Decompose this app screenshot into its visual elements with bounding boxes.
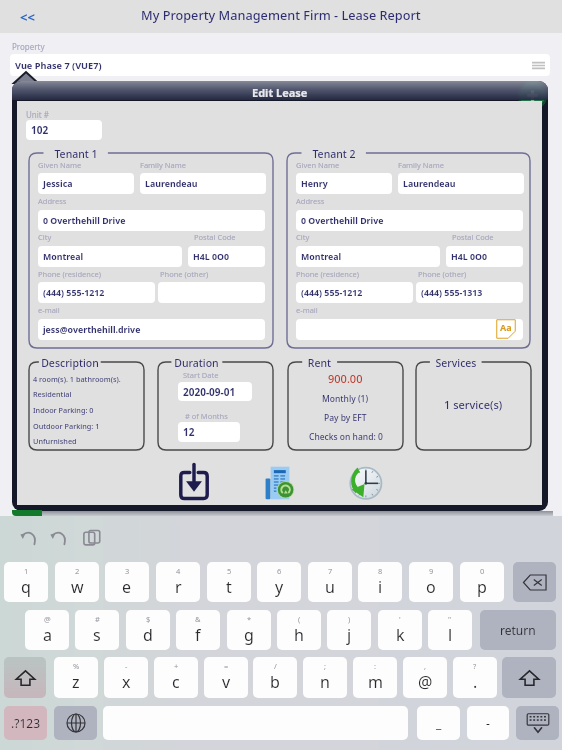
button[interactable]: jess@overthehill.drive <box>38 319 265 340</box>
staticText: ? <box>473 661 477 671</box>
staticText: .?123 <box>11 715 41 731</box>
staticText: z <box>72 671 80 693</box>
button[interactable]: 9 <box>409 562 453 602</box>
button[interactable]: 0 Overthehill Drive <box>38 210 265 231</box>
button[interactable]: * <box>227 610 271 650</box>
staticText: Given Name <box>296 160 340 170</box>
button[interactable]: ? <box>453 657 497 698</box>
staticText: Address <box>296 196 325 206</box>
staticText: H4L 0O0 <box>451 251 487 263</box>
button[interactable]: H4L 0O0 <box>188 246 265 267</box>
staticText: m <box>368 671 383 693</box>
staticText: Aa <box>500 321 512 333</box>
staticText: j <box>347 624 352 646</box>
staticText: ( <box>298 614 301 624</box>
button[interactable]: / <box>253 657 297 698</box>
button[interactable]: Hide keyboard <box>516 706 559 740</box>
button[interactable]: Redo <box>46 525 72 551</box>
button[interactable]: 3 <box>105 562 149 602</box>
button[interactable]: 0 <box>460 562 504 602</box>
button[interactable]: Backspace <box>513 562 556 602</box>
button[interactable]: History <box>342 459 384 501</box>
button[interactable]: Undo <box>16 525 42 551</box>
button[interactable]: 4 <box>156 562 200 602</box>
button[interactable]: % <box>54 657 98 698</box>
button[interactable]: Montreal <box>296 246 440 267</box>
button[interactable]: Numbers <box>4 706 47 740</box>
button[interactable]: Henry <box>296 173 392 194</box>
button[interactable]: Shift <box>502 657 556 698</box>
staticText: - <box>125 661 128 671</box>
staticText: - <box>486 715 490 731</box>
button[interactable]: (444) 555-1313 <box>416 282 523 303</box>
button[interactable]: ' <box>378 610 422 650</box>
staticText: Montreal <box>301 251 342 263</box>
button[interactable]: Back <box>14 4 41 30</box>
button[interactable]: ; <box>303 657 347 698</box>
button[interactable]: - <box>467 706 509 740</box>
staticText: 9 <box>429 566 434 576</box>
button[interactable]: Refresh report <box>258 459 298 501</box>
button[interactable]: 102 <box>26 120 102 140</box>
staticText: v <box>222 671 231 693</box>
staticText: City <box>38 232 52 242</box>
button[interactable]: Vue Phase 7 (VUE7) <box>10 54 550 76</box>
button[interactable]: 2 <box>55 562 99 602</box>
button[interactable]: & <box>176 610 220 650</box>
button[interactable]: Laurendeau <box>398 173 524 194</box>
button[interactable]: Return <box>480 610 556 650</box>
button[interactable]: 2020-09-01 <box>178 382 252 401</box>
button[interactable]: : <box>353 657 397 698</box>
staticText: l <box>448 624 453 646</box>
button[interactable]: 5 <box>207 562 251 602</box>
button[interactable]: + <box>154 657 198 698</box>
button[interactable]: _ <box>417 706 460 740</box>
staticText: . <box>473 671 478 693</box>
button[interactable]: 12 <box>178 422 240 442</box>
staticText: t <box>226 576 232 598</box>
button[interactable]: Montreal <box>38 246 182 267</box>
button[interactable]: H4L 0O0 <box>446 246 523 267</box>
button[interactable]: ( <box>277 610 321 650</box>
button[interactable]: Save <box>175 459 211 501</box>
button[interactable] <box>296 319 523 340</box>
button[interactable]: 7 <box>308 562 352 602</box>
staticText: # of Months <box>185 411 228 421</box>
button[interactable]: 0 Overthehill Drive <box>296 210 523 231</box>
button[interactable]: (444) 555-1212 <box>38 282 155 303</box>
button[interactable]: Shift <box>4 657 46 698</box>
button[interactable]: = <box>204 657 248 698</box>
staticText: Phone (residence) <box>38 269 102 279</box>
staticText: Postal Code <box>452 232 494 242</box>
button[interactable]: Language <box>54 706 97 740</box>
button[interactable]: (444) 555-1212 <box>296 282 413 303</box>
button[interactable]: - <box>104 657 148 698</box>
button[interactable]: 6 <box>257 562 301 602</box>
button[interactable]: $ <box>126 610 170 650</box>
staticText: Add a lease <box>372 88 422 100</box>
staticText: Montreal <box>43 251 84 263</box>
button[interactable]: , <box>403 657 447 698</box>
staticText: Phone (other) <box>418 269 467 279</box>
staticText: w <box>71 576 84 598</box>
staticText: b <box>270 671 280 693</box>
staticText: $ <box>146 614 151 624</box>
staticText: q <box>21 576 31 598</box>
staticText: 102 <box>31 123 49 137</box>
staticText: Services <box>430 356 482 370</box>
button[interactable]: Paste <box>79 525 105 551</box>
staticText: f <box>195 624 201 646</box>
staticText: jess@overthehill.drive <box>43 324 141 336</box>
button[interactable]: " <box>428 610 472 650</box>
button[interactable]: Laurendeau <box>140 173 266 194</box>
staticText: 0 <box>480 566 485 576</box>
button[interactable]: 1 <box>4 562 48 602</box>
staticText: : <box>374 661 377 671</box>
button[interactable]: ) <box>327 610 371 650</box>
button[interactable]: # <box>75 610 119 650</box>
button[interactable]: Jessica <box>38 173 134 194</box>
button[interactable]: @ <box>25 610 69 650</box>
button[interactable]: 8 <box>358 562 402 602</box>
